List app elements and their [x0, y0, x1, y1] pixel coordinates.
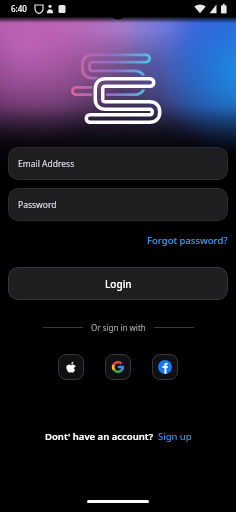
staticText: Or sign in with	[91, 322, 146, 333]
staticText: Login	[105, 277, 132, 291]
button[interactable]	[105, 354, 131, 380]
staticText: Dont' have an account?	[45, 430, 154, 443]
staticText: 6:40	[11, 3, 27, 14]
button[interactable]: Email Address	[8, 147, 228, 180]
staticText: Forgot password?	[147, 234, 228, 247]
button[interactable]: Forgot password?	[147, 234, 228, 247]
button[interactable]: Sign up	[158, 430, 192, 443]
staticText: Email Address	[18, 158, 75, 170]
button[interactable]	[58, 354, 84, 380]
staticText: Sign up	[158, 430, 192, 443]
button[interactable]	[152, 354, 178, 380]
button[interactable]: Password	[8, 188, 228, 221]
staticText: Password	[18, 199, 57, 211]
button[interactable]: Login	[8, 267, 228, 300]
